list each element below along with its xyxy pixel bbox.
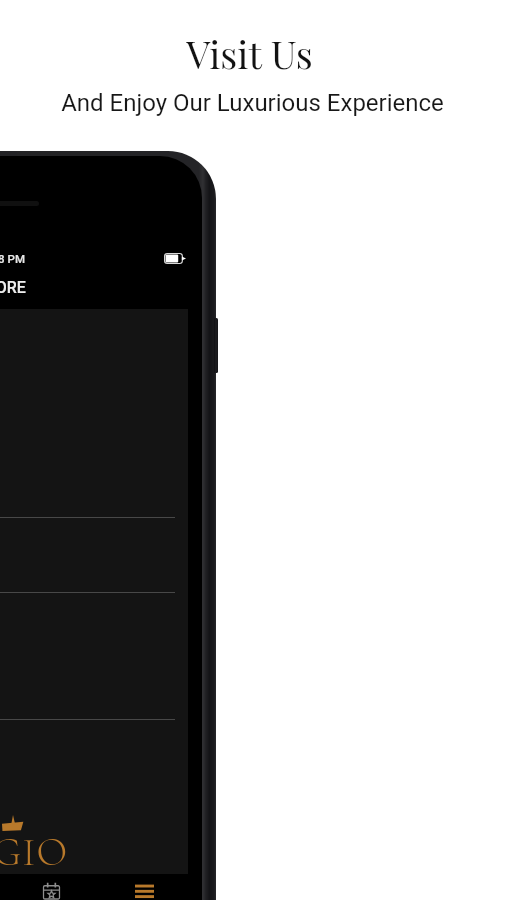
button[interactable]: Events <box>43 882 60 899</box>
staticText: Visit Us <box>186 28 313 79</box>
staticText: SORAGGIO <box>0 828 69 876</box>
staticText: 9:48 PM <box>0 252 25 265</box>
button[interactable]: Menu <box>135 883 154 899</box>
staticText: And Enjoy Our Luxurious Experience <box>61 89 444 117</box>
staticText: OUR STORE <box>0 278 26 297</box>
